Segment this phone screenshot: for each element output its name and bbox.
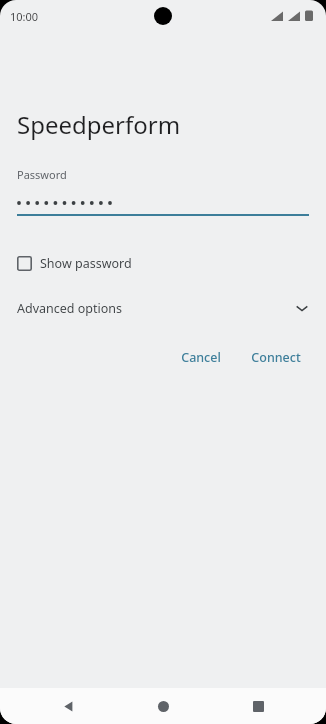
staticText: Password	[17, 167, 67, 182]
staticText: Connect	[251, 349, 301, 366]
button[interactable]: Home	[147, 690, 179, 722]
staticText: Speedperform	[17, 108, 181, 141]
staticText: Cancel	[181, 349, 221, 366]
staticText: Advanced options	[17, 300, 123, 317]
button[interactable]: Cancel	[173, 343, 229, 372]
button[interactable]: Back	[52, 690, 84, 722]
staticText: 10:00	[10, 9, 39, 24]
button[interactable]: Show password	[17, 249, 132, 277]
staticText: Show password	[40, 255, 132, 272]
button[interactable]: Connect	[243, 343, 309, 372]
button[interactable]: Advanced options	[17, 293, 309, 323]
button[interactable]	[17, 192, 309, 214]
button[interactable]: Recent apps	[242, 690, 274, 722]
other: Expand advanced options	[295, 301, 309, 315]
